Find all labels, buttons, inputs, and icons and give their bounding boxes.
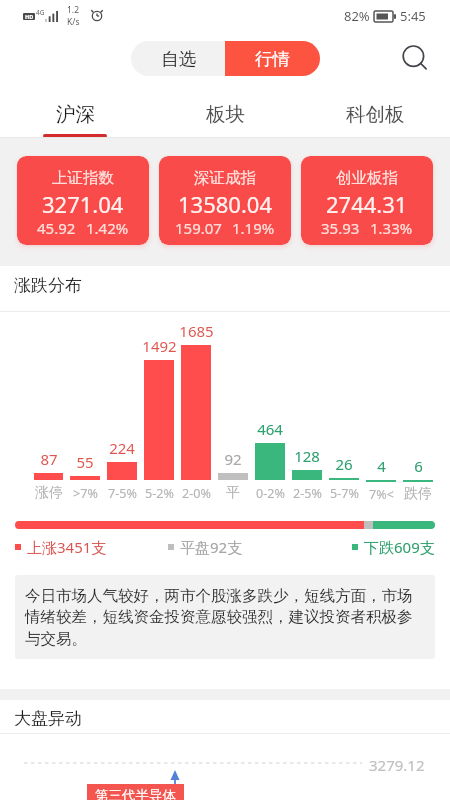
staticText: 159.07 [175,218,222,238]
staticText: 深证成指 [194,168,256,188]
staticText: 下跌609支 [364,537,435,557]
staticText: 82% [344,7,370,25]
staticText: 涨跌分布 [14,275,82,296]
staticText: HD [25,13,34,20]
staticText: 2-5% [293,485,322,502]
button[interactable]: 科创板 [300,84,450,138]
staticText: 1.33% [370,218,413,238]
staticText: 3279.12 [369,755,425,775]
staticText: K/s [67,16,80,28]
button[interactable]: Search [397,40,433,76]
staticText: 平盘92支 [180,537,243,557]
staticText: 13580.04 [178,189,272,219]
staticText: 大盘异动 [14,708,82,729]
staticText: 涨停 [35,484,63,502]
staticText: 2-0% [182,485,211,502]
staticText: 26 [335,454,353,474]
staticText: 2744.31 [326,189,408,219]
staticText: 5-2% [145,485,174,502]
staticText: 自选 [161,48,196,70]
staticText: 创业板指 [336,168,398,188]
staticText: 3271.04 [42,189,124,219]
button[interactable]: 板块 [150,84,300,138]
staticText: 1.42% [86,218,129,238]
staticText: 6 [414,456,423,476]
staticText: 1.2 [67,4,80,16]
staticText: 464 [257,419,283,439]
staticText: 1492 [142,336,177,356]
staticText: 0-2% [256,485,285,502]
button[interactable]: 沪深 [0,84,150,138]
staticText: 35.93 [321,218,360,238]
staticText: 5-7% [330,485,359,502]
staticText: 224 [109,438,135,458]
staticText: 平 [226,484,240,502]
staticText: 45.92 [37,218,76,238]
staticText: 128 [294,446,320,466]
staticText: 1685 [179,321,214,341]
staticText: 上证指数 [52,168,114,188]
staticText: 1.19% [232,218,275,238]
staticText: 92 [224,449,242,469]
staticText: 板块 [206,102,245,127]
staticText: 第三代半导体 [95,787,176,800]
staticText: 7-5% [108,485,137,502]
button[interactable]: 深证成指 [159,156,291,245]
button[interactable]: 行情 [225,41,320,76]
button[interactable]: 创业板指 [301,156,433,245]
staticText: 4 [377,456,386,476]
staticText: 行情 [255,48,290,70]
staticText: 5:45 [400,7,426,25]
staticText: 87 [40,449,58,469]
staticText: 沪深 [56,102,95,127]
staticText: 科创板 [346,102,405,127]
staticText: 上涨3451支 [27,537,107,557]
staticText: 55 [76,452,94,472]
staticText: 7%< [369,486,394,503]
staticText: >7% [73,485,98,502]
button[interactable]: 自选 [131,41,225,76]
staticText: 4G [36,8,45,17]
staticText: 跌停 [404,485,432,503]
staticText: 今日市场人气较好，两市个股涨多跌少，短线方面，市场情绪较差，短线资金投资意愿较强… [25,586,425,649]
button[interactable]: 上证指数 [17,156,149,245]
